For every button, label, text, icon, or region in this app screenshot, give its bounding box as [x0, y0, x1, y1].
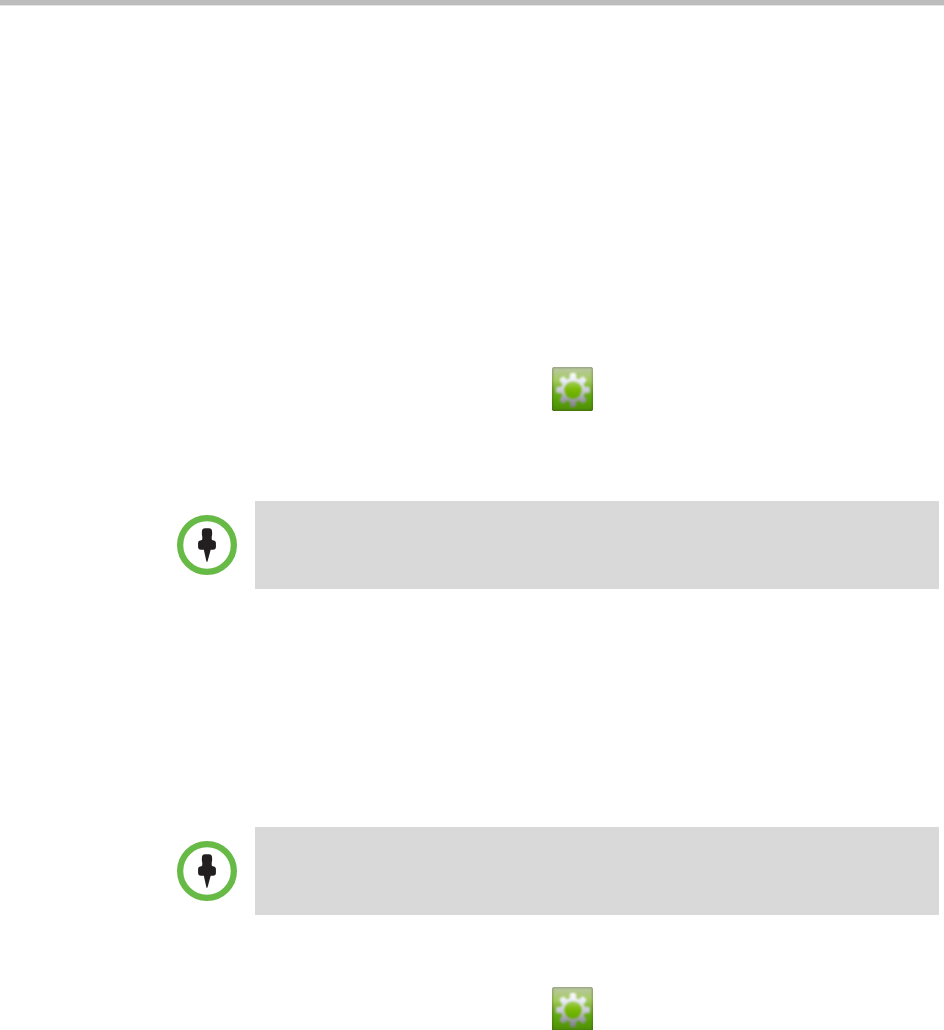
button[interactable]: Settings [552, 987, 593, 1030]
button[interactable]: Saved place [0, 827, 944, 915]
button[interactable]: Settings [552, 367, 593, 411]
other: Saved place [177, 841, 237, 901]
other: Saved place [177, 515, 237, 575]
button[interactable]: Saved place [0, 501, 944, 589]
